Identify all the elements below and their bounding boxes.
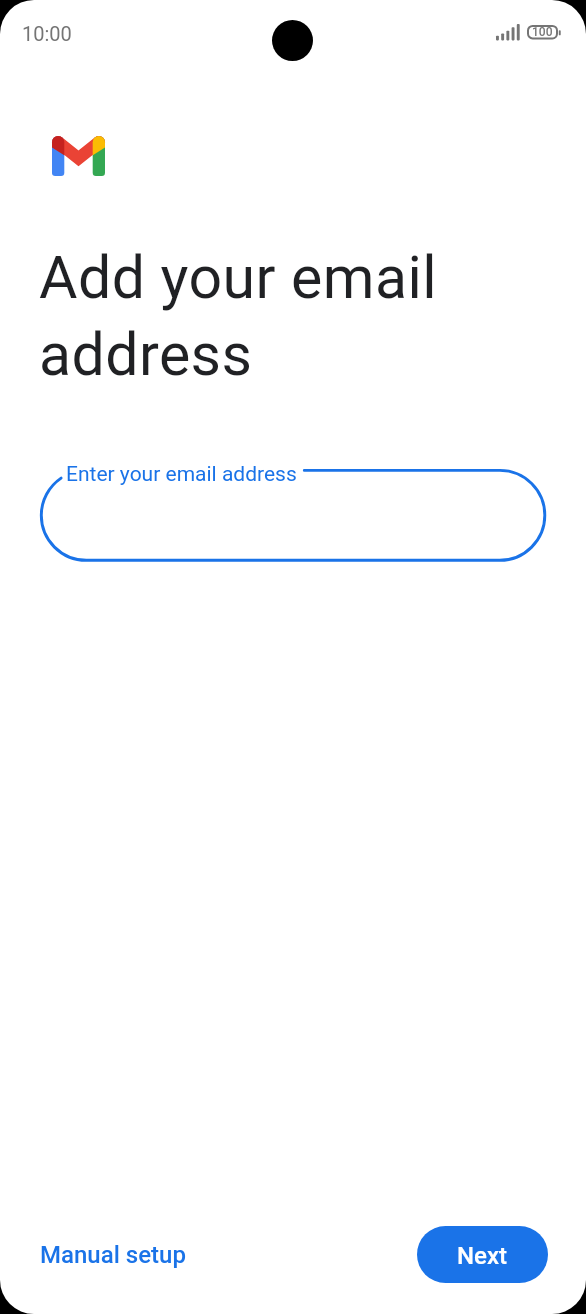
other: Mobile signal xyxy=(496,24,520,41)
button[interactable]: Manual setup xyxy=(24,1232,202,1278)
staticText: Add your email address xyxy=(39,243,438,389)
button[interactable]: Next xyxy=(417,1226,548,1283)
staticText: 10:00 xyxy=(22,22,72,45)
staticText: 100 xyxy=(532,25,553,39)
staticText: Next xyxy=(457,1242,508,1270)
staticText: Enter your email address xyxy=(66,462,297,487)
other: Battery 100 percent xyxy=(527,24,563,41)
staticText: Manual setup xyxy=(40,1241,186,1269)
button[interactable]: Enter your email address xyxy=(30,455,560,575)
other: Gmail xyxy=(52,136,105,176)
